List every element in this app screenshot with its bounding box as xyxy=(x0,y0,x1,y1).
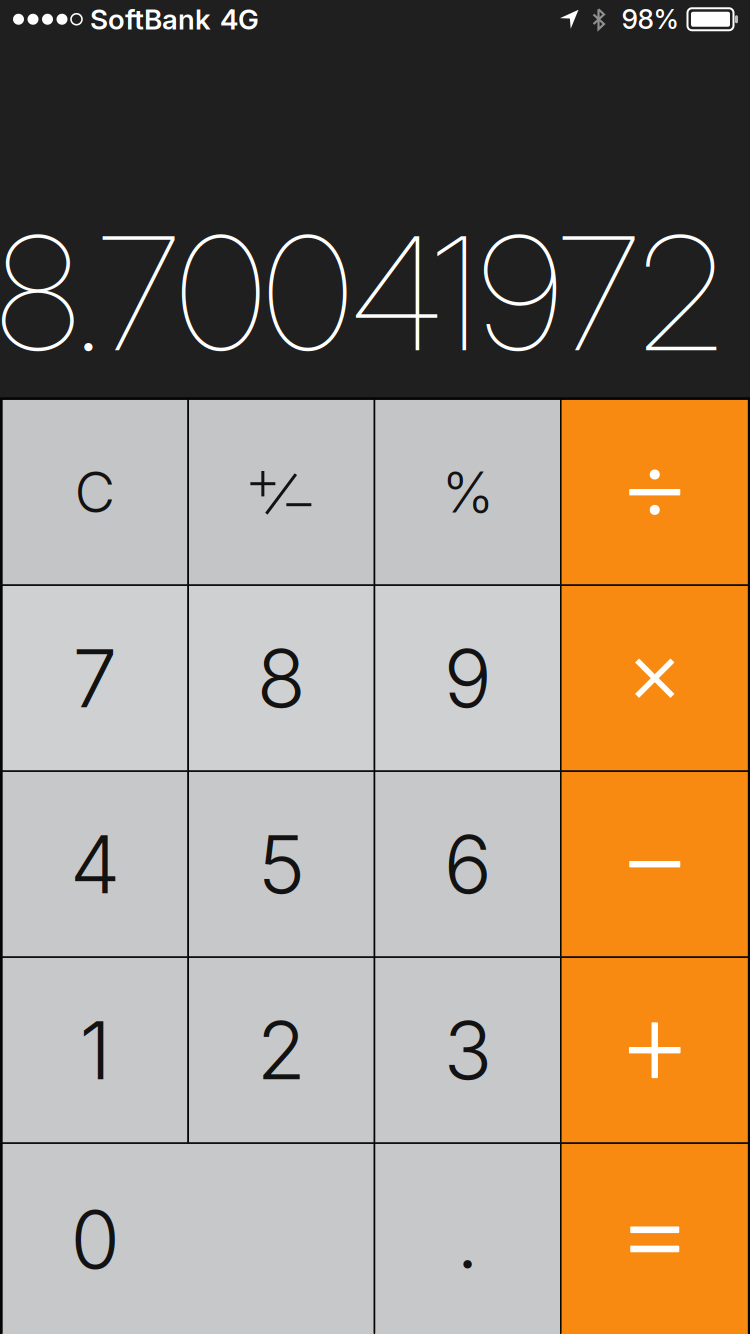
staticText: 98% xyxy=(621,3,678,35)
staticText: 8.70041972 xyxy=(0,198,723,388)
button[interactable]: Plus xyxy=(562,958,748,1142)
staticText: 0 xyxy=(70,1191,119,1288)
button[interactable]: C xyxy=(3,400,187,584)
staticText: 5 xyxy=(258,816,305,913)
button[interactable]: . xyxy=(375,1144,560,1334)
staticText: 8 xyxy=(257,630,306,727)
staticText: 4G xyxy=(220,2,259,36)
staticText: 4 xyxy=(70,816,120,913)
button[interactable]: 3 xyxy=(375,958,560,1142)
button[interactable]: Plus Minus xyxy=(189,400,374,584)
button[interactable]: 4 xyxy=(3,772,187,956)
button[interactable]: Equals xyxy=(562,1144,748,1334)
button[interactable]: 2 xyxy=(189,958,374,1142)
staticText: 3 xyxy=(444,1002,492,1099)
staticText: % xyxy=(442,458,494,526)
button[interactable]: Multiply xyxy=(562,586,748,770)
button[interactable]: % xyxy=(375,400,560,584)
button[interactable]: 7 xyxy=(3,586,187,770)
staticText: 9 xyxy=(444,630,492,727)
button[interactable]: 6 xyxy=(375,772,560,956)
staticText: 7 xyxy=(72,630,117,727)
button[interactable]: 0 xyxy=(3,1144,374,1334)
staticText: 2 xyxy=(257,1002,306,1099)
staticText: . xyxy=(456,1191,479,1288)
staticText: C xyxy=(74,458,115,526)
staticText: 1 xyxy=(79,1002,110,1099)
button[interactable]: Divide xyxy=(562,400,748,584)
button[interactable]: 9 xyxy=(375,586,560,770)
button[interactable]: 8 xyxy=(189,586,374,770)
staticText: 6 xyxy=(444,816,492,913)
button[interactable]: Minus xyxy=(562,772,748,956)
button[interactable]: 5 xyxy=(189,772,374,956)
button[interactable]: 1 xyxy=(3,958,187,1142)
staticText: SoftBank xyxy=(90,2,211,36)
